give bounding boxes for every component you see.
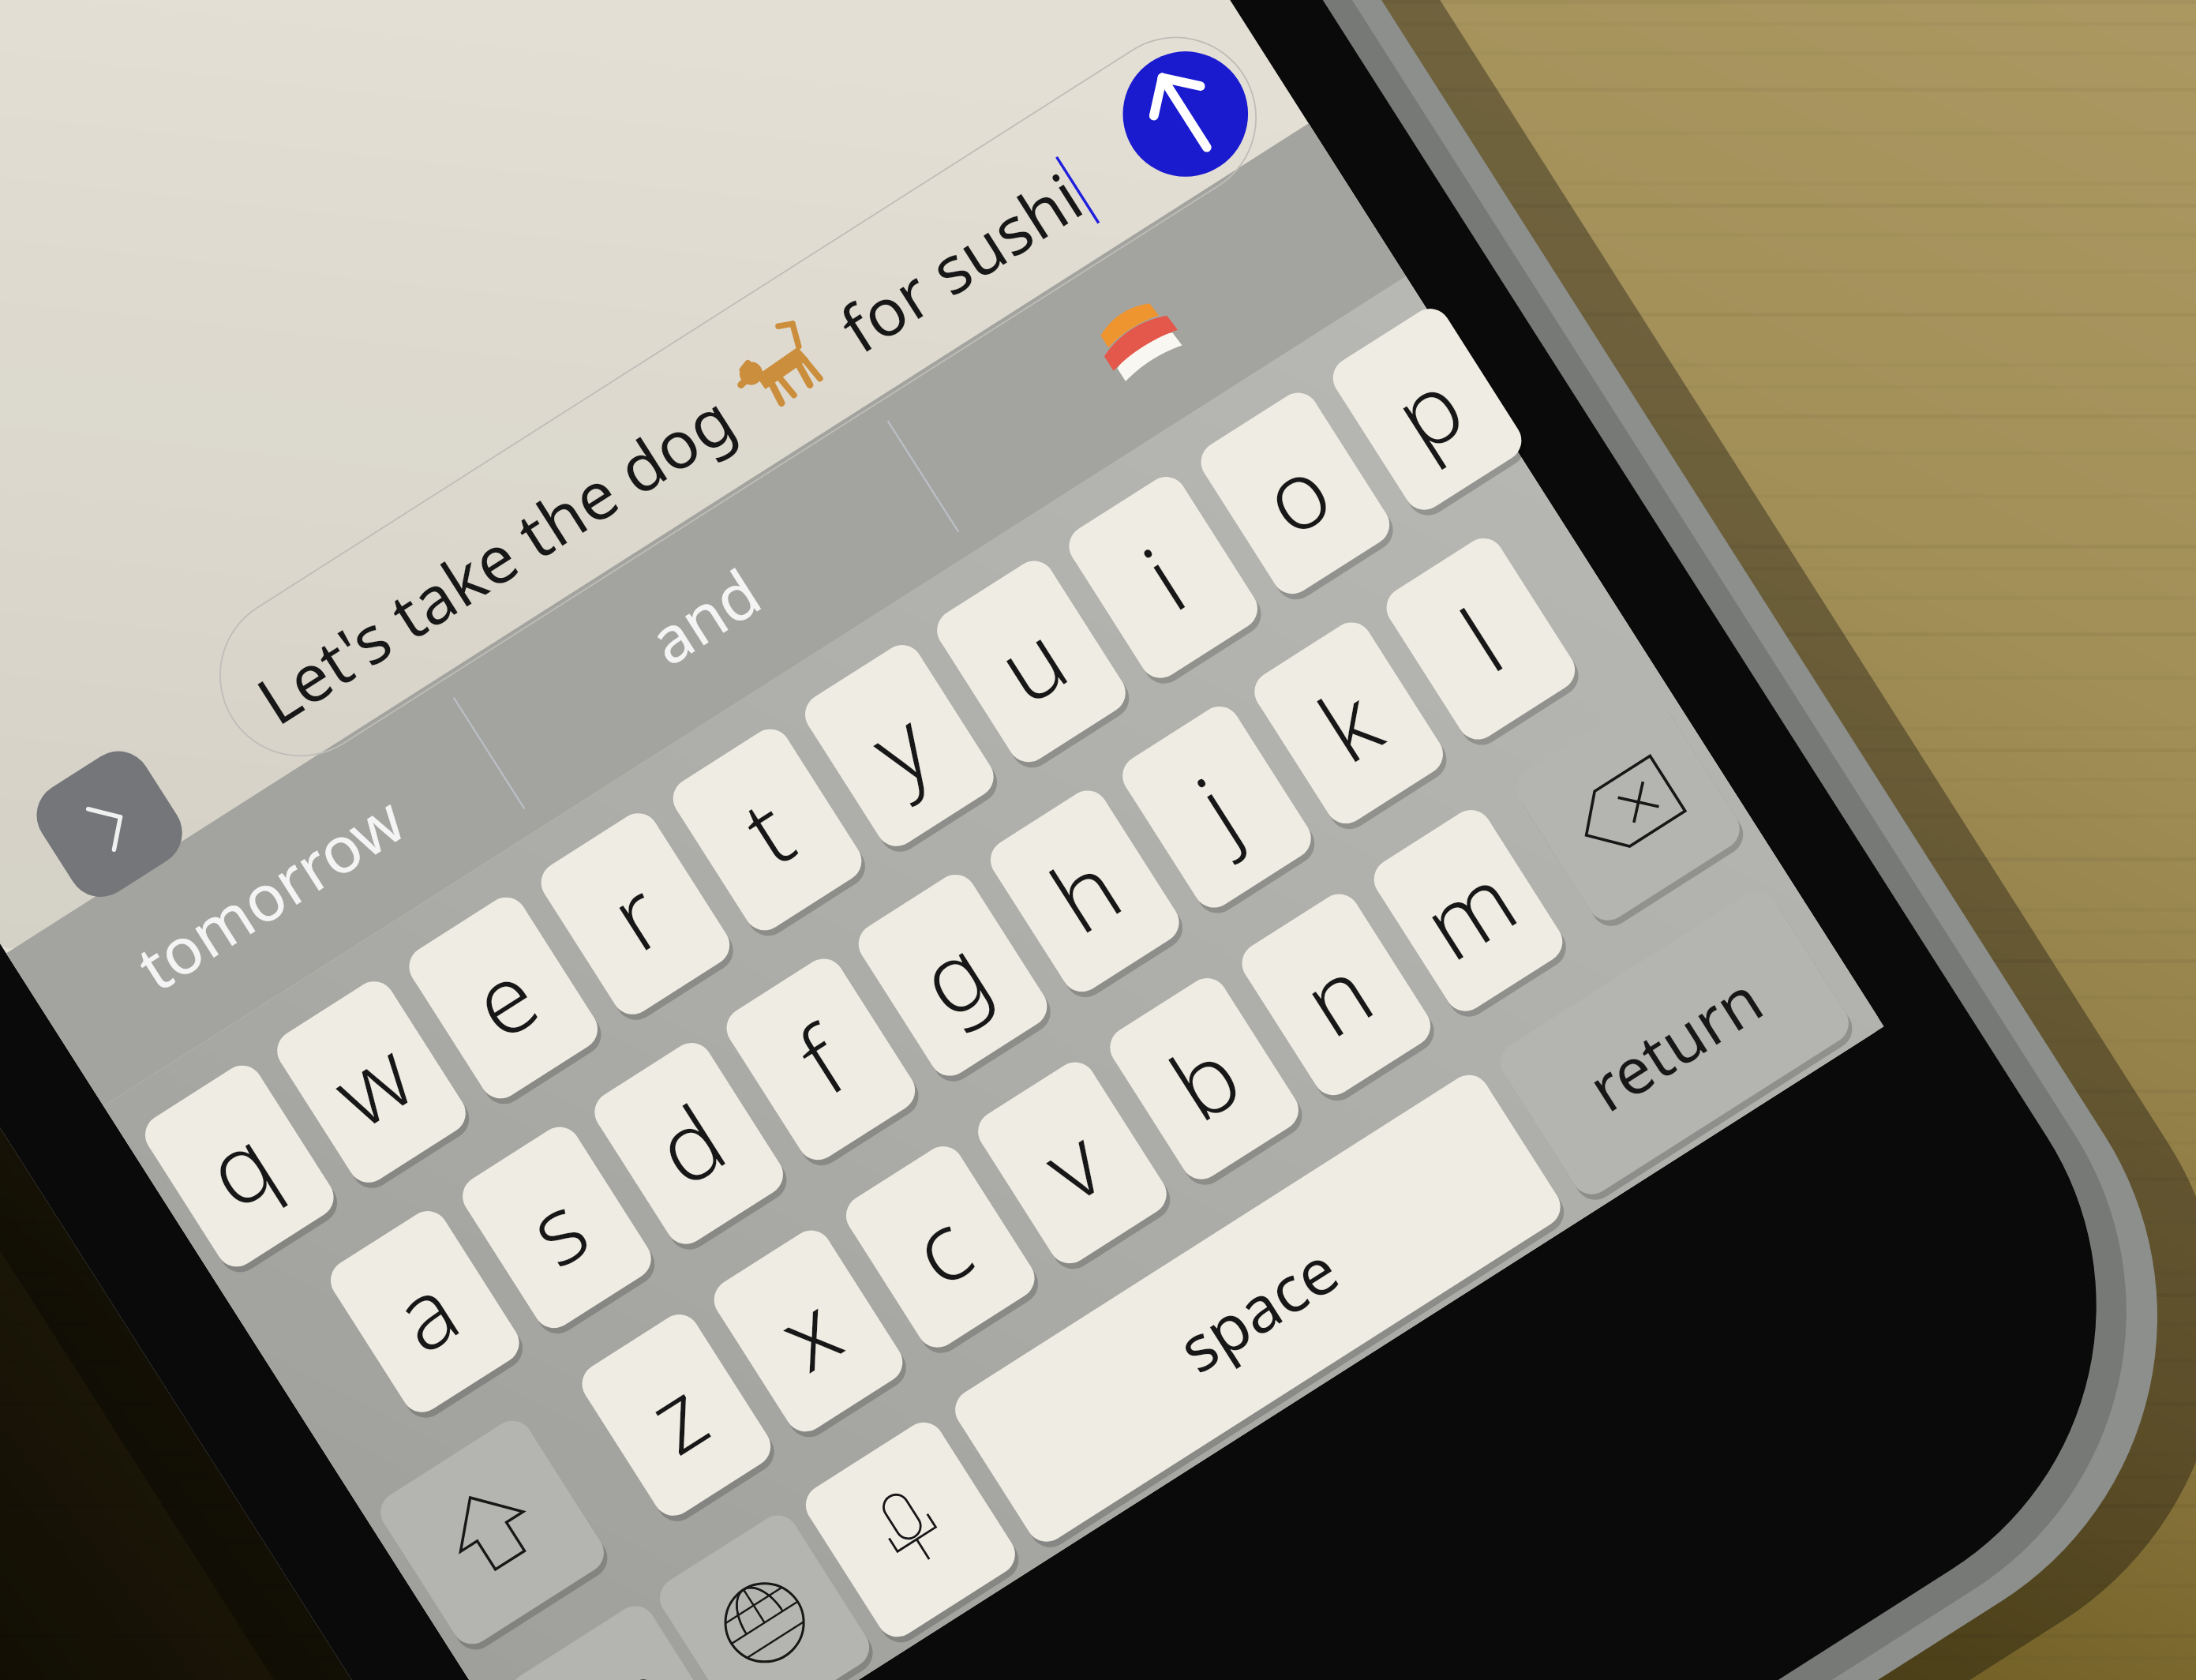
button[interactable]: Change keyboard [652, 1592, 877, 1653]
button[interactable]: q [137, 1128, 342, 1203]
button[interactable]: Send [1089, 92, 1282, 135]
button[interactable]: j [1115, 769, 1319, 844]
button[interactable]: n [1234, 957, 1438, 1032]
button[interactable]: i [1061, 539, 1265, 614]
button[interactable]: m [1366, 872, 1570, 947]
button[interactable]: v [970, 1125, 1175, 1200]
button[interactable]: s [455, 1190, 659, 1265]
button[interactable]: return [1492, 1029, 1856, 1056]
button[interactable]: space [947, 1213, 1568, 1403]
button[interactable]: p [1325, 371, 1529, 446]
button[interactable]: l [1378, 601, 1583, 676]
button[interactable]: h [982, 853, 1186, 928]
button[interactable]: y [797, 707, 1002, 782]
button[interactable]: k [1246, 685, 1451, 760]
button[interactable]: and [440, 553, 971, 677]
button[interactable]: Dictate [797, 1498, 1022, 1560]
button[interactable]: f [718, 1022, 923, 1097]
button[interactable]: e [401, 960, 605, 1035]
button[interactable]: u [929, 624, 1134, 699]
button[interactable]: d [586, 1105, 791, 1180]
button[interactable]: x [706, 1293, 910, 1368]
button[interactable]: z [574, 1377, 778, 1452]
button[interactable]: Delete [1508, 782, 1748, 834]
button[interactable]: Shift [373, 1506, 612, 1558]
button[interactable]: b [1102, 1041, 1306, 1116]
button[interactable]: c [838, 1209, 1042, 1284]
button[interactable]: t [665, 792, 869, 867]
button[interactable]: Open apps [24, 804, 194, 842]
button[interactable]: g [850, 937, 1055, 1012]
button[interactable]: tomorrow [6, 829, 537, 953]
button[interactable]: w [269, 1044, 474, 1119]
button[interactable]: Message input field [189, 142, 1287, 651]
button[interactable]: r [533, 876, 737, 951]
button[interactable]: a [322, 1273, 527, 1348]
button[interactable]: o [1193, 456, 1397, 531]
button[interactable]: Sushi emoji [874, 276, 1405, 399]
